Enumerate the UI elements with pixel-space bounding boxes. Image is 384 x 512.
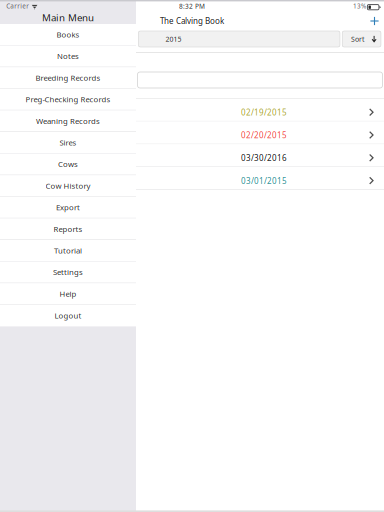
button[interactable]: 03/30/2016: [136, 144, 384, 167]
button[interactable]: Cow History: [0, 175, 136, 197]
staticText: Books: [56, 29, 79, 40]
button[interactable]: Search: [137, 72, 382, 88]
staticText: Logout: [54, 310, 81, 321]
button[interactable]: 2015: [138, 31, 340, 47]
button[interactable]: Notes: [0, 46, 136, 67]
staticText: Notes: [57, 51, 79, 61]
staticText: 8:32 PM: [179, 2, 205, 11]
button[interactable]: Tutorial: [0, 240, 136, 262]
staticText: Export: [56, 202, 80, 212]
button[interactable]: 02/20/2015: [136, 121, 384, 144]
button[interactable]: 03/01/2015: [136, 167, 384, 190]
staticText: 03/30/2016: [241, 153, 287, 163]
button[interactable]: Reports: [0, 218, 136, 240]
staticText: Help: [59, 288, 76, 299]
staticText: 13%: [353, 2, 366, 10]
button[interactable]: Add record: [366, 12, 383, 29]
button[interactable]: Sires: [0, 132, 136, 154]
staticText: Settings: [53, 267, 83, 277]
staticText: 03/01/2015: [241, 175, 287, 186]
button[interactable]: Settings: [0, 262, 136, 283]
staticText: The Calving Book: [160, 16, 224, 26]
button[interactable]: 02/19/2015: [136, 99, 384, 121]
staticText: Main Menu: [42, 11, 94, 24]
staticText: Sires: [59, 137, 76, 148]
staticText: 2015: [165, 34, 181, 44]
button[interactable]: Sort: [342, 31, 381, 47]
staticText: Breeding Records: [35, 72, 100, 83]
staticText: Cows: [58, 159, 78, 169]
staticText: 02/20/2015: [241, 130, 287, 141]
staticText: Weaning Records: [36, 116, 100, 126]
staticText: Sort: [351, 34, 365, 44]
staticText: Tutorial: [54, 245, 82, 256]
button[interactable]: Preg-Checking Records: [0, 89, 136, 110]
staticText: Cow History: [45, 180, 90, 191]
staticText: 02/19/2015: [241, 107, 287, 118]
staticText: Carrier: [6, 2, 29, 10]
staticText: Reports: [53, 224, 82, 234]
button[interactable]: Cows: [0, 154, 136, 175]
button[interactable]: Logout: [0, 305, 136, 326]
button[interactable]: Books: [0, 24, 136, 46]
staticText: Preg-Checking Records: [25, 94, 110, 104]
button[interactable]: Export: [0, 197, 136, 218]
button[interactable]: Breeding Records: [0, 67, 136, 89]
button[interactable]: Weaning Records: [0, 110, 136, 132]
button[interactable]: Help: [0, 283, 136, 305]
